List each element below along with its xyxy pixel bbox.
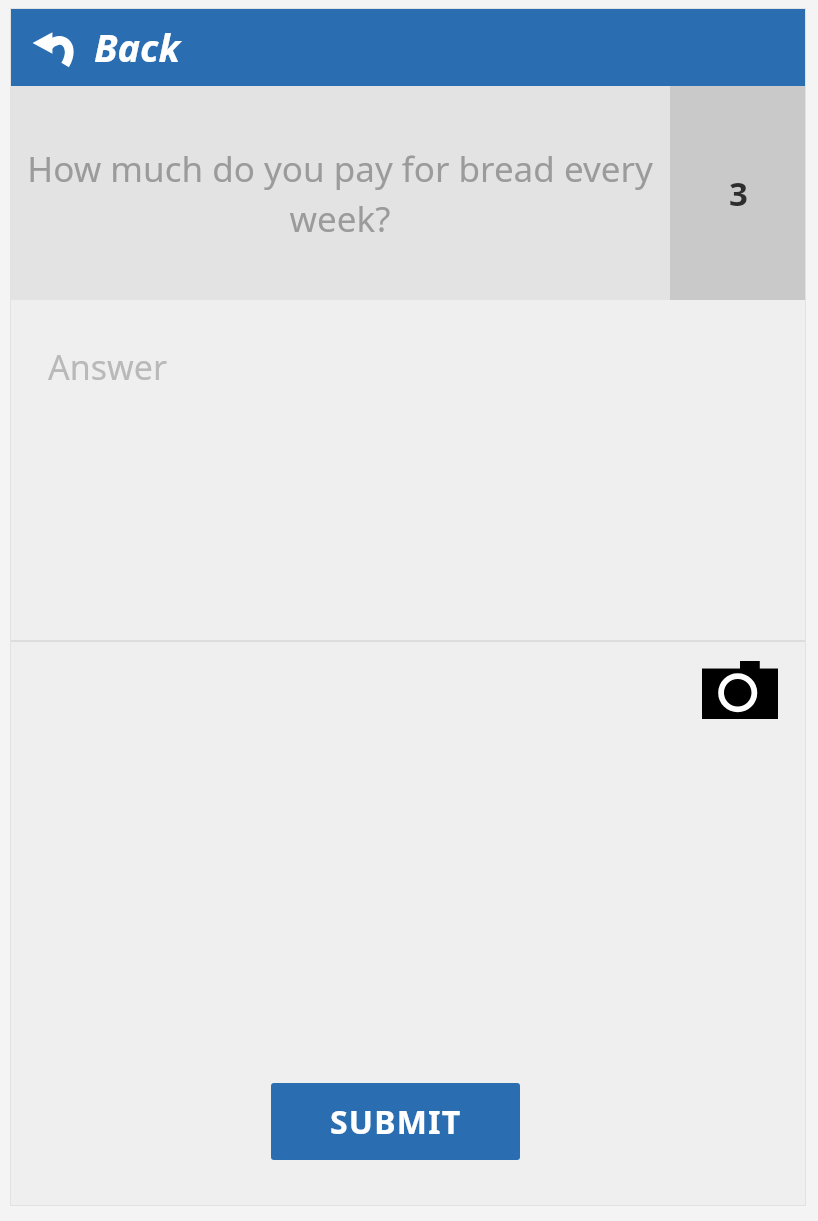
staticText: Back — [94, 21, 181, 73]
button[interactable]: Take photo — [702, 661, 778, 719]
staticText: SUBMIT — [330, 1100, 462, 1144]
button[interactable]: 3 — [670, 86, 806, 300]
button[interactable]: SUBMIT — [271, 1083, 520, 1160]
other: Back — [32, 27, 78, 67]
staticText: Answer — [48, 344, 167, 390]
button[interactable]: How much do you pay for bread every week… — [10, 86, 670, 300]
staticText: 3 — [729, 171, 748, 216]
button[interactable]: Back — [10, 8, 806, 86]
staticText: How much do you pay for bread every week… — [26, 145, 654, 242]
